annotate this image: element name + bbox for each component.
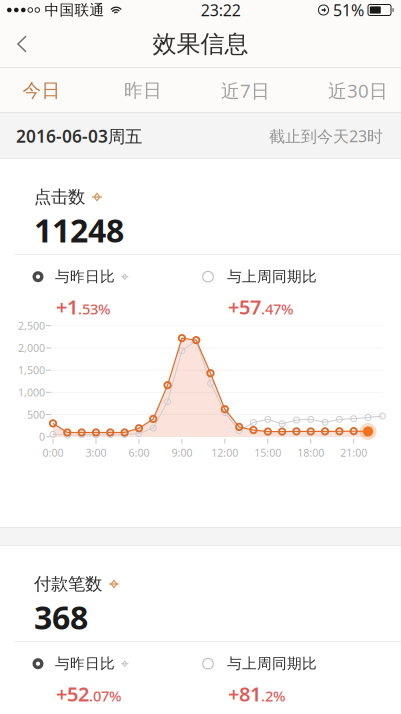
staticText: +81	[228, 680, 261, 707]
staticText: 截止到今天23时	[269, 125, 383, 147]
staticText: 2,500	[18, 319, 45, 333]
button[interactable]: 近30日	[313, 68, 401, 113]
staticText: 与昨日比	[55, 655, 115, 673]
staticText: +52	[56, 680, 89, 707]
staticText: 11248	[34, 209, 124, 251]
button[interactable]: 今日	[0, 68, 86, 113]
staticText: 2,000	[18, 341, 45, 355]
staticText: 中国联通	[45, 1, 105, 19]
staticText: 368	[34, 596, 88, 638]
staticText: 效果信息	[152, 29, 248, 59]
staticText: .47%	[261, 299, 293, 318]
button[interactable]: 近7日	[200, 68, 290, 113]
staticText: 21:00	[340, 446, 367, 460]
staticText: 15:00	[254, 446, 281, 460]
staticText: 9:00	[171, 446, 192, 460]
staticText: 2016-06-03周五	[16, 124, 142, 147]
staticText: 近7日	[221, 78, 270, 103]
staticText: 与上周同期比	[227, 655, 317, 673]
button[interactable]: 与上周同期比	[202, 266, 372, 288]
button[interactable]: 与昨日比	[32, 266, 192, 288]
staticText: 近30日	[328, 78, 388, 103]
staticText: 23:22	[201, 0, 241, 21]
button[interactable]: 与上周同期比	[202, 653, 372, 675]
staticText: +57	[228, 293, 261, 320]
staticText: 与上周同期比	[227, 268, 317, 286]
staticText: 与昨日比	[55, 268, 115, 286]
button[interactable]: Back	[0, 22, 44, 66]
staticText: .07%	[89, 686, 121, 705]
staticText: 6:00	[128, 446, 149, 460]
staticText: 1,500	[18, 363, 45, 377]
staticText: 1,000	[18, 385, 45, 399]
staticText: +1	[56, 293, 78, 320]
staticText: 付款笔数	[34, 573, 102, 595]
staticText: 今日	[22, 79, 60, 102]
button[interactable]: 与昨日比	[32, 653, 192, 675]
staticText: 51%	[333, 0, 364, 21]
staticText: 昨日	[124, 79, 162, 102]
staticText: 0:00	[42, 446, 63, 460]
staticText: 0	[39, 430, 45, 444]
staticText: 点击数	[34, 186, 85, 208]
button[interactable]: 昨日	[98, 68, 188, 113]
staticText: 12:00	[211, 446, 238, 460]
staticText: 3:00	[85, 446, 106, 460]
staticText: .53%	[78, 299, 110, 318]
staticText: 500	[27, 407, 45, 422]
staticText: 18:00	[297, 446, 324, 460]
staticText: .2%	[261, 686, 285, 705]
